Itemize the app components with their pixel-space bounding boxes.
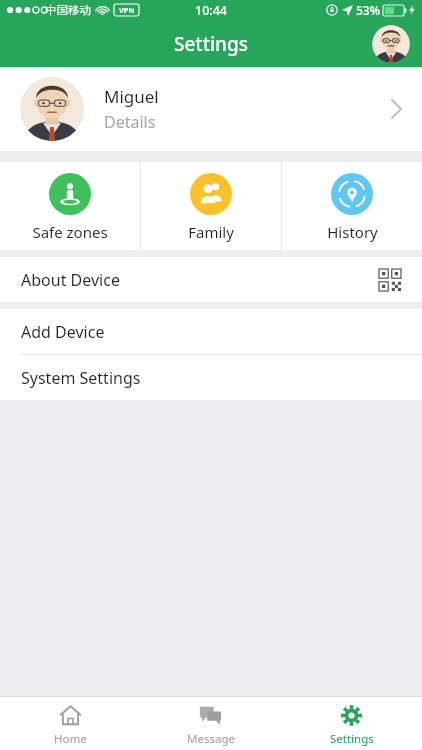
staticText: Safe zones [32, 222, 108, 242]
staticText: 10:44 [195, 2, 228, 19]
staticText: Settings [330, 731, 374, 747]
button[interactable]: History [282, 162, 422, 250]
button[interactable]: Safe zones [0, 162, 140, 250]
button[interactable]: Home [0, 697, 140, 750]
staticText: About Device [21, 269, 120, 291]
staticText: 53% [356, 2, 380, 18]
staticText: Miguel [104, 85, 159, 108]
button[interactable]: Message [140, 697, 281, 750]
staticText: Settings [174, 31, 248, 57]
staticText: Add Device [21, 321, 105, 343]
button[interactable]: Settings [281, 697, 422, 750]
staticText: Message [187, 731, 235, 747]
other: QR code [379, 269, 401, 291]
staticText: History [327, 222, 378, 242]
button[interactable]: Add Device [0, 309, 422, 354]
staticText: Details [104, 111, 156, 133]
staticText: Family [188, 222, 234, 242]
button[interactable]: About Device [0, 257, 422, 302]
button[interactable]: Profile [372, 25, 410, 63]
button[interactable]: System Settings [0, 355, 422, 400]
staticText: 中国移动 [45, 3, 91, 17]
staticText: Home [54, 731, 87, 747]
button[interactable]: Miguel [0, 67, 422, 151]
staticText: VPN [119, 5, 135, 15]
staticText: System Settings [21, 367, 141, 389]
button[interactable]: Family [141, 162, 281, 250]
